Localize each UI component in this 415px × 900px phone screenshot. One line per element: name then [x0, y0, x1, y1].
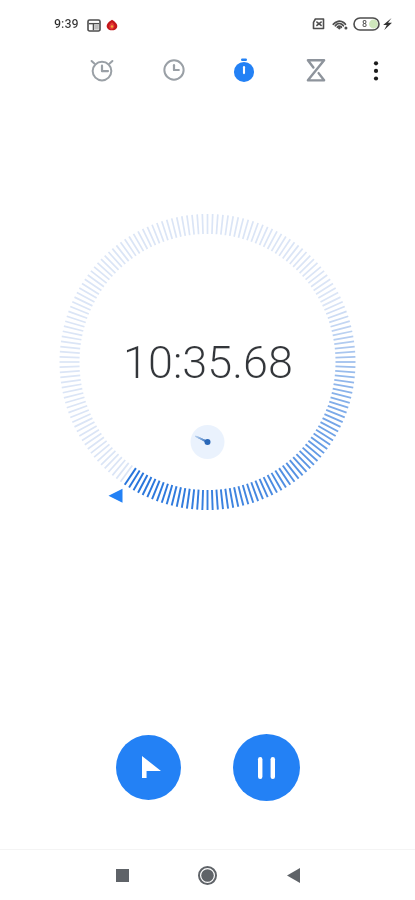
button[interactable]: Recents	[100, 853, 144, 897]
button[interactable]: More options	[354, 48, 398, 92]
button[interactable]: Start	[116, 735, 181, 800]
button[interactable]: Alarm	[80, 48, 124, 92]
button[interactable]: Pause	[233, 734, 300, 801]
staticText: 8	[362, 19, 368, 30]
button[interactable]: Timer	[294, 48, 338, 92]
button[interactable]: Back	[271, 853, 315, 897]
staticText: 10:35.68	[123, 336, 293, 389]
button[interactable]: Stopwatch	[222, 48, 266, 92]
staticText: 9:39	[54, 16, 79, 31]
button[interactable]: World clock	[152, 48, 196, 92]
button[interactable]: Home	[185, 853, 229, 897]
